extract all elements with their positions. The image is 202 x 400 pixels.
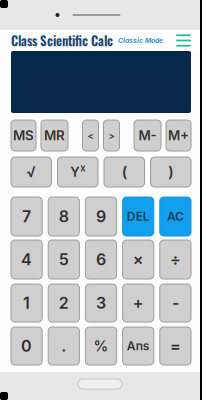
staticText: > [108, 130, 114, 141]
button[interactable]: × [123, 240, 154, 279]
staticText: 9 [96, 207, 106, 226]
staticText: DEL [127, 209, 150, 224]
button[interactable]: 9 [85, 197, 117, 236]
button[interactable]: ÷ [160, 240, 191, 279]
button[interactable]: 5 [48, 240, 79, 279]
staticText: 0 [21, 336, 32, 356]
button[interactable]: 6 [85, 240, 117, 279]
button[interactable]: DEL [123, 197, 154, 236]
staticText: 2 [59, 293, 69, 313]
button[interactable]: 2 [48, 284, 79, 322]
button[interactable]: M+ [166, 120, 191, 151]
staticText: 1 [23, 293, 30, 313]
staticText: Classic Mode [118, 36, 163, 45]
staticText: 7 [22, 207, 31, 226]
button[interactable]: Y [57, 157, 98, 187]
staticText: 5 [59, 250, 69, 269]
button[interactable]: AC [160, 197, 191, 236]
staticText: 6 [96, 250, 106, 269]
button[interactable]: % [85, 327, 117, 365]
button[interactable]: 8 [48, 197, 79, 236]
staticText: √ [26, 163, 36, 181]
button[interactable]: Menu [176, 34, 191, 46]
button[interactable]: - [160, 284, 191, 322]
staticText: AC [167, 209, 184, 224]
staticText: Y [70, 164, 80, 180]
staticText: 8 [59, 207, 69, 226]
staticText: = [170, 336, 181, 356]
button[interactable]: < [82, 120, 98, 151]
staticText: MS [13, 127, 34, 143]
button[interactable]: 1 [11, 284, 42, 322]
button[interactable]: 4 [11, 240, 42, 279]
button[interactable]: Home [78, 379, 122, 389]
staticText: ) [168, 163, 173, 181]
button[interactable]: = [160, 327, 191, 365]
button[interactable]: MR [41, 120, 68, 151]
staticText: MR [44, 127, 65, 143]
button[interactable]: MS [11, 120, 36, 151]
button[interactable]: + [123, 284, 154, 322]
staticText: ÷ [170, 250, 181, 269]
staticText: M- [138, 127, 156, 143]
staticText: 4 [21, 250, 32, 269]
staticText: x [80, 162, 85, 174]
button[interactable]: ( [104, 157, 144, 187]
staticText: . [61, 336, 66, 356]
button[interactable]: 0 [11, 327, 42, 365]
staticText: M+ [168, 127, 189, 143]
button[interactable]: M- [134, 120, 161, 151]
staticText: ( [122, 163, 127, 181]
button[interactable]: √ [11, 157, 51, 187]
staticText: % [93, 337, 108, 355]
staticText: 3 [96, 293, 106, 313]
button[interactable]: 7 [11, 197, 42, 236]
staticText: - [172, 293, 179, 313]
button[interactable]: . [48, 327, 79, 365]
button[interactable]: Ans [123, 327, 154, 365]
staticText: Class Scientific Calc [11, 31, 113, 50]
button[interactable]: ) [150, 157, 191, 187]
button[interactable]: > [103, 120, 119, 151]
staticText: < [87, 130, 93, 141]
staticText: Ans [127, 339, 150, 353]
staticText: × [133, 250, 144, 269]
staticText: + [133, 293, 144, 313]
button[interactable]: 3 [85, 284, 117, 322]
